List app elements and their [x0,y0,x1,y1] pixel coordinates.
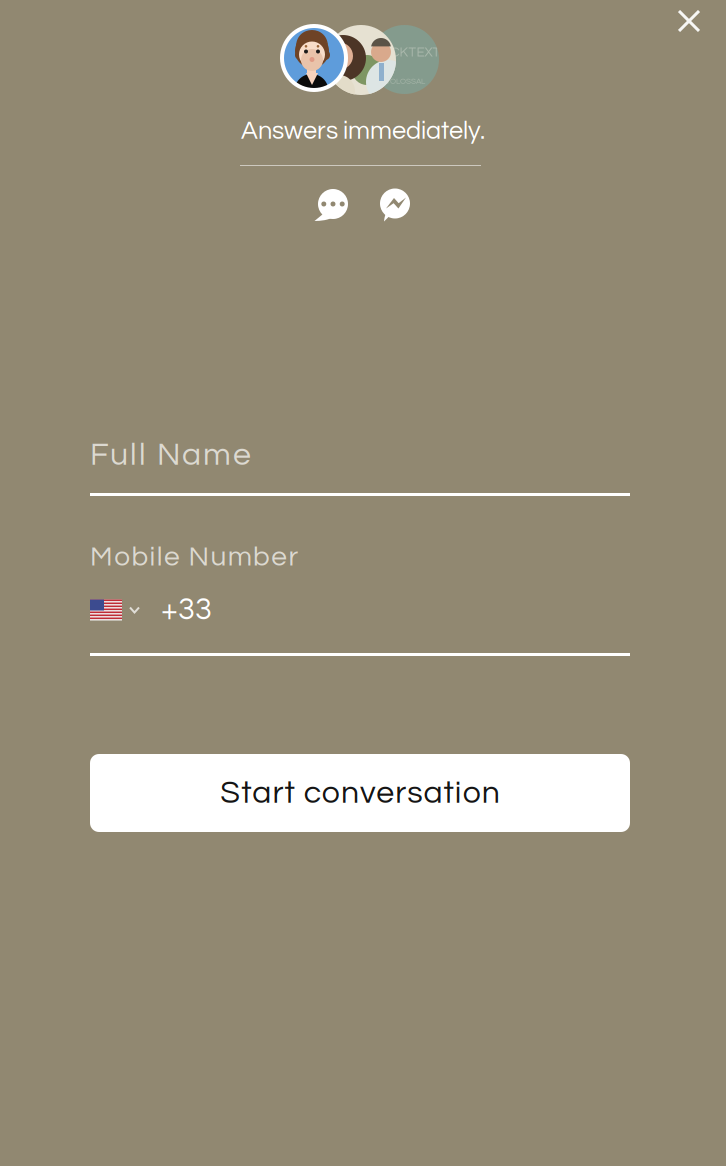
staticText: Mobile Number [90,543,306,571]
staticText: QUICKTEXT [368,45,440,59]
staticText: COLOSSAL [384,77,425,85]
staticText: Answers immediately. [241,118,485,144]
button[interactable]: Select country code [90,598,152,622]
button[interactable]: SMS chat [313,189,349,221]
button[interactable]: Close [665,0,713,45]
staticText: Full Name [90,438,260,471]
staticText: Start conversation [212,776,508,809]
button[interactable]: Messenger chat [378,188,413,221]
staticText: +33 [161,594,212,626]
button[interactable]: Start conversation [90,754,630,832]
